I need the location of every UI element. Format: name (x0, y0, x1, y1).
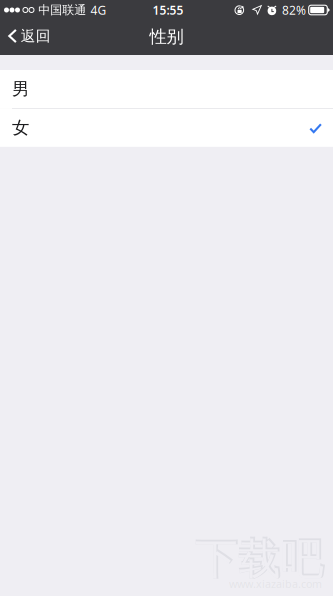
staticText: 82% (282, 2, 306, 18)
button[interactable]: 男 (0, 70, 333, 108)
staticText: 返回 (21, 27, 51, 45)
button[interactable]: 返回 (0, 20, 61, 55)
staticText: 女 (12, 117, 29, 138)
staticText: 中国联通 (38, 3, 86, 17)
staticText: 4G (90, 2, 106, 18)
staticText: www.xiazaiba.com (229, 577, 322, 591)
staticText: 性别 (149, 26, 183, 47)
staticText: 下载吧 (195, 533, 324, 585)
staticText: 男 (12, 78, 29, 100)
staticText: 下载吧 (195, 533, 324, 585)
button[interactable]: 女 (0, 109, 333, 147)
staticText: 15:55 (152, 2, 183, 18)
